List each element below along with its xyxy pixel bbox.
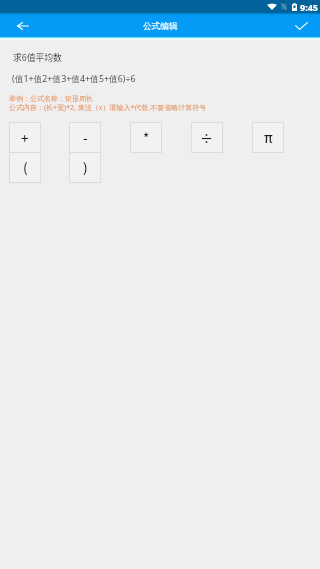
button[interactable]: *	[130, 122, 162, 153]
button[interactable]: π	[252, 122, 284, 153]
button[interactable]: ÷	[191, 122, 223, 153]
staticText: 求6值平均数	[13, 51, 62, 64]
staticText: )	[83, 158, 88, 177]
staticText: *	[143, 128, 150, 147]
staticText: 公式内容：(长+宽)*2, 乘法（x）请输入*代替,不要省略计算符号	[9, 103, 207, 113]
staticText: π	[264, 128, 273, 147]
button[interactable]: Confirm	[288, 14, 312, 37]
staticText: 公式编辑	[143, 21, 178, 32]
button[interactable]: -	[69, 122, 101, 153]
button[interactable]: )	[69, 152, 101, 183]
button[interactable]: Back	[10, 14, 34, 37]
staticText: -	[83, 128, 88, 147]
staticText: ÷	[200, 128, 214, 147]
staticText: (值1+值2+值3+值4+值5+值6)÷6	[12, 73, 136, 85]
staticText: (	[23, 158, 28, 177]
staticText: +	[21, 128, 29, 147]
staticText: 9:45	[300, 1, 318, 13]
staticText: 举例：公式名称：矩形周长	[9, 94, 93, 103]
button[interactable]: +	[9, 122, 41, 153]
button[interactable]: (	[9, 152, 41, 183]
